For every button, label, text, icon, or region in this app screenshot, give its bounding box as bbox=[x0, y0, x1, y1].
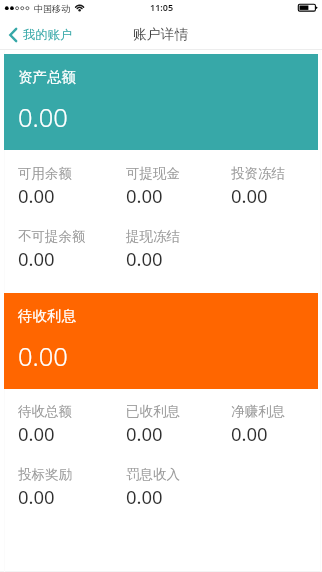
staticText: 可用余额 bbox=[18, 165, 72, 182]
button[interactable]: 可用余额 bbox=[0, 167, 104, 203]
staticText: 提现冻结 bbox=[126, 228, 180, 245]
staticText: 中国移动 bbox=[34, 3, 70, 14]
staticText: 0.00 bbox=[18, 100, 68, 135]
button[interactable]: 资产总额 bbox=[4, 54, 318, 150]
button[interactable]: 待收利息 bbox=[4, 293, 318, 389]
button[interactable]: 返回我的账户 bbox=[0, 20, 83, 49]
staticText: 待收利息 bbox=[18, 307, 76, 325]
staticText: 0.00 bbox=[126, 183, 163, 208]
staticText: 0.00 bbox=[126, 421, 163, 446]
button[interactable]: 已收利息 bbox=[108, 405, 212, 441]
staticText: 0.00 bbox=[18, 246, 55, 271]
staticText: 0.00 bbox=[231, 421, 268, 446]
staticText: 资产总额 bbox=[18, 68, 76, 86]
button[interactable]: 提现冻结 bbox=[108, 230, 212, 266]
button[interactable]: 待收总额 bbox=[0, 405, 104, 441]
staticText: 我的账户 bbox=[23, 27, 73, 42]
staticText: 0.00 bbox=[18, 183, 55, 208]
staticText: 待收总额 bbox=[18, 403, 72, 420]
staticText: 0.00 bbox=[18, 484, 55, 509]
staticText: 已收利息 bbox=[126, 403, 180, 420]
staticText: 投资冻结 bbox=[231, 165, 285, 182]
staticText: 投标奖励 bbox=[18, 466, 72, 483]
button[interactable]: 不可提余额 bbox=[0, 230, 104, 266]
staticText: 0.00 bbox=[126, 246, 163, 271]
button[interactable]: 投标奖励 bbox=[0, 468, 104, 504]
staticText: 0.00 bbox=[231, 183, 268, 208]
staticText: 0.00 bbox=[18, 421, 55, 446]
staticText: 11:05 bbox=[150, 1, 174, 13]
button[interactable]: 净赚利息 bbox=[213, 405, 317, 441]
button[interactable]: 投资冻结 bbox=[213, 167, 317, 203]
staticText: 0.00 bbox=[18, 339, 68, 374]
button[interactable]: 罚息收入 bbox=[108, 468, 212, 504]
staticText: 0.00 bbox=[126, 484, 163, 509]
staticText: 罚息收入 bbox=[126, 466, 180, 483]
staticText: 可提现金 bbox=[126, 165, 180, 182]
staticText: 不可提余额 bbox=[18, 228, 86, 245]
button[interactable]: 可提现金 bbox=[108, 167, 212, 203]
staticText: 净赚利息 bbox=[231, 403, 285, 420]
staticText: 账户详情 bbox=[133, 26, 189, 43]
